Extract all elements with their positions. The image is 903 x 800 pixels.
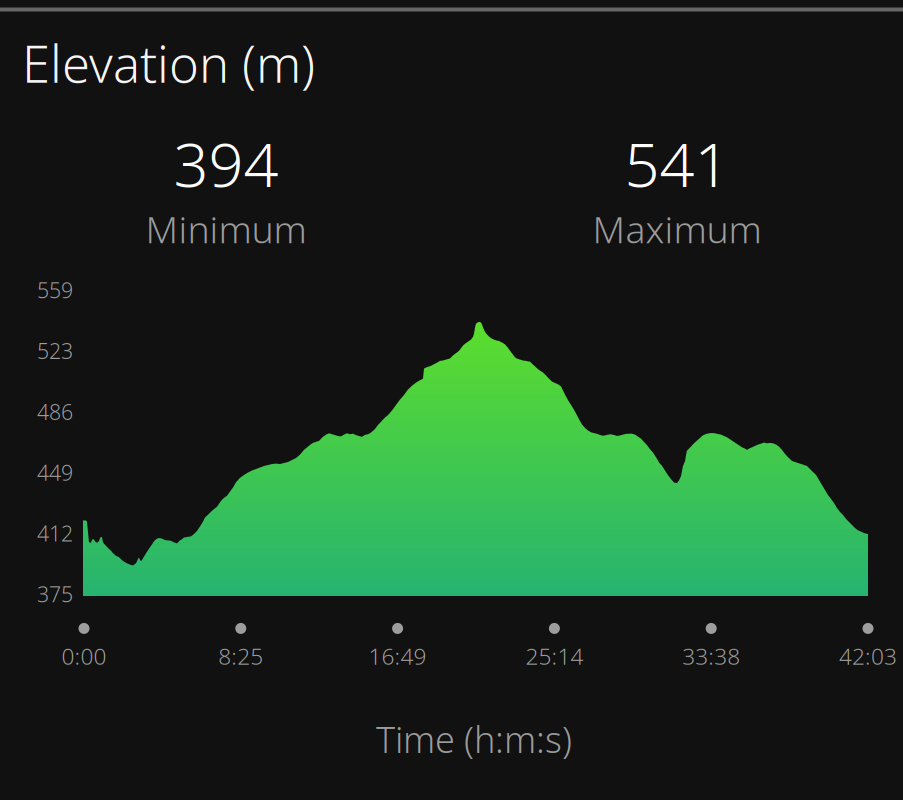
staticText: Elevation (m)	[22, 29, 315, 97]
staticText: 523	[37, 337, 73, 365]
button[interactable]: 541	[517, 128, 837, 248]
staticText: 0:00	[61, 641, 106, 671]
button[interactable]: 394	[66, 128, 386, 248]
staticText: Time (h:m:s)	[376, 715, 572, 763]
staticText: 33:38	[682, 641, 740, 671]
staticText: 541	[624, 122, 729, 204]
staticText: 412	[37, 519, 73, 547]
staticText: Minimum	[145, 204, 306, 253]
staticText: 8:25	[218, 641, 263, 671]
staticText: 42:03	[839, 641, 897, 671]
staticText: 486	[37, 397, 73, 426]
staticText: 16:49	[369, 641, 427, 671]
staticText: 25:14	[525, 641, 583, 671]
staticText: 375	[37, 580, 73, 608]
staticText: 559	[37, 276, 73, 304]
staticText: 449	[37, 458, 73, 486]
staticText: 394	[173, 122, 278, 204]
staticText: Maximum	[592, 204, 761, 253]
